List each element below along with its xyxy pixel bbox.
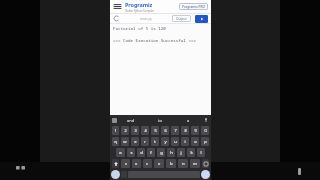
button[interactable]: Voice input [203,117,209,123]
staticText: f [150,150,152,156]
button[interactable]: p [201,137,209,146]
button[interactable]: 5 [151,126,159,135]
button[interactable]: Output [172,15,191,22]
staticText: 0 [204,128,207,133]
button[interactable]: u [171,137,179,146]
button[interactable]: Run [195,15,208,23]
button[interactable]: and [117,115,145,125]
button[interactable]: 1 [112,126,119,135]
button[interactable]: 4 [141,126,149,135]
button[interactable]: Shorts [14,164,26,176]
staticText: 9 [194,128,197,133]
button[interactable]: b [166,159,176,168]
button[interactable]: Clipboard [112,118,117,123]
staticText: === Code Execution Successful === [113,38,196,44]
staticText: u [174,139,177,145]
staticText: 6 [164,128,167,133]
button[interactable]: k [187,148,195,157]
staticText: 2 [124,128,127,133]
button[interactable]: z [121,159,130,168]
button[interactable]: 6 [161,126,169,135]
button[interactable]: x [132,159,141,168]
staticText: c [146,161,149,167]
button[interactable]: 9 [191,126,199,135]
staticText: z [125,161,127,167]
button[interactable]: d [137,148,145,157]
staticText: j [180,150,182,156]
button[interactable]: q [112,137,119,146]
button[interactable]: Backspace [202,159,209,168]
button[interactable]: e [131,137,139,146]
staticText: e [134,139,137,145]
button[interactable]: 8 [181,126,189,135]
staticText: 5 [154,128,157,133]
staticText: i [184,139,186,145]
staticText: d [140,150,143,156]
staticText: l [200,150,202,156]
staticText: a [119,150,122,156]
button[interactable]: Programiz PRO [179,3,208,10]
button[interactable]: m [190,159,200,168]
staticText: 3 [134,128,137,133]
button[interactable]: n [178,159,188,168]
staticText: b [170,161,173,167]
staticText: y [164,139,167,145]
button[interactable]: f [147,148,155,157]
staticText: to [158,118,162,123]
button[interactable]: i [181,137,189,146]
staticText: v [158,161,161,167]
button[interactable]: l [197,148,205,157]
staticText: x [135,161,138,167]
staticText: a [187,118,190,123]
staticText: t [154,139,156,145]
staticText: q [114,139,117,145]
button[interactable]: g [157,148,165,157]
staticText: n [182,161,185,167]
staticText: p [204,139,207,145]
staticText: Factorial of 5 is 120 [113,26,166,32]
staticText: main.py [140,17,152,21]
button[interactable]: Shift [112,159,119,168]
button[interactable]: to [145,115,174,125]
button[interactable]: Enter [201,170,210,179]
staticText: Programiz [125,1,153,8]
button[interactable]: 3 [131,126,139,135]
staticText: Programiz PRO [182,5,205,9]
staticText: o [194,139,197,145]
staticText: s [130,150,133,156]
staticText: h [170,150,173,156]
button[interactable]: a [174,115,203,125]
staticText: r [144,139,146,145]
staticText: Output [176,17,187,21]
staticText: g [160,150,163,156]
staticText: and [127,118,135,123]
button[interactable]: h [167,148,175,157]
staticText: 8 [184,128,187,133]
button[interactable]: c [143,159,152,168]
button[interactable]: t [151,137,159,146]
staticText: w [123,139,127,145]
button[interactable]: 7 [171,126,179,135]
button[interactable]: y [161,137,169,146]
button[interactable]: More [294,166,304,176]
button[interactable]: j [177,148,185,157]
staticText: 1 [114,128,117,133]
button[interactable]: a [116,148,125,157]
button[interactable]: Menu [113,2,122,11]
staticText: Online Python Compiler [125,9,155,13]
button[interactable]: o [191,137,199,146]
button[interactable]: Symbols [111,170,120,179]
staticText: m [193,161,197,167]
button[interactable]: v [154,159,164,168]
staticText: 4 [144,128,147,133]
staticText: 7 [174,128,177,133]
button[interactable]: r [141,137,149,146]
button[interactable]: w [121,137,129,146]
button[interactable]: Reset [113,15,120,22]
button[interactable]: s [127,148,135,157]
staticText: k [190,150,193,156]
button[interactable]: 2 [121,126,129,135]
button[interactable]: 0 [201,126,209,135]
